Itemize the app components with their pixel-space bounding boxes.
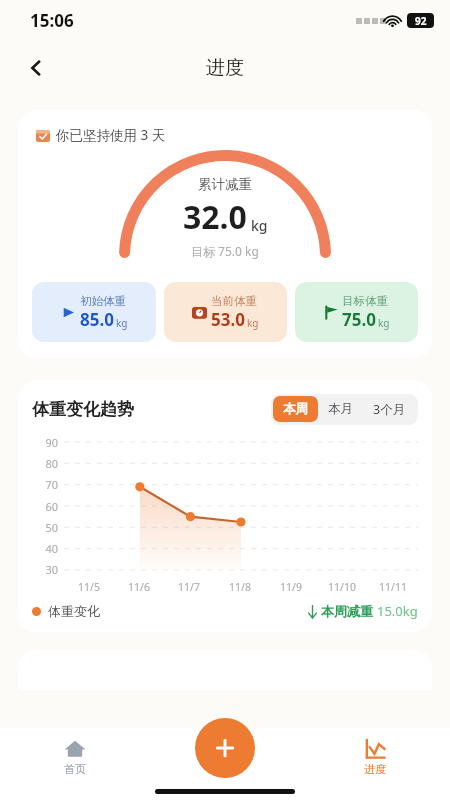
staticText: kg — [251, 216, 268, 235]
staticText: 11/8 — [229, 580, 251, 594]
staticText: 3个月 — [373, 401, 406, 418]
staticText: 11/6 — [128, 580, 150, 594]
button[interactable]: 目标体重 — [295, 282, 418, 342]
button[interactable]: 3个月 — [363, 396, 416, 423]
staticText: 进度 — [206, 56, 244, 80]
staticText: 30 — [45, 562, 58, 577]
button[interactable]: 进度 — [300, 733, 450, 780]
button[interactable]: Add record — [195, 718, 255, 778]
staticText: 80 — [45, 456, 58, 471]
staticText: 60 — [45, 499, 58, 514]
staticText: 50 — [45, 520, 58, 535]
button[interactable]: 初始体重 — [32, 282, 156, 342]
staticText: 本周 — [283, 401, 308, 417]
button[interactable]: 首页 — [0, 733, 150, 780]
staticText: 你已坚持使用 3 天 — [56, 126, 166, 144]
staticText: 初始体重 — [80, 294, 126, 308]
button[interactable]: 当前体重 — [164, 282, 287, 342]
button[interactable]: Back — [14, 46, 58, 90]
staticText: 90 — [45, 435, 58, 450]
staticText: 70 — [45, 477, 58, 492]
staticText: 当前体重 — [211, 294, 257, 308]
staticText: 85.0 — [80, 308, 114, 331]
staticText: 首页 — [64, 762, 86, 776]
staticText: 目标体重 — [342, 294, 388, 308]
staticText: 11/5 — [78, 580, 100, 594]
staticText: 11/11 — [379, 580, 407, 594]
staticText: 本周减重 — [321, 603, 373, 619]
staticText: 11/7 — [178, 580, 200, 594]
staticText: 75.0 — [342, 308, 376, 331]
staticText: kg — [247, 316, 259, 330]
staticText: 体重变化 — [48, 603, 100, 619]
staticText: kg — [378, 316, 390, 330]
staticText: 体重变化趋势 — [32, 399, 134, 420]
staticText: 本月 — [328, 401, 353, 417]
staticText: 53.0 — [211, 308, 245, 331]
staticText: 累计减重 — [198, 176, 252, 193]
staticText: kg — [116, 316, 128, 330]
staticText: 进度 — [364, 762, 386, 776]
staticText: 15.0kg — [377, 602, 418, 620]
staticText: 40 — [45, 541, 58, 556]
staticText: 15:06 — [30, 9, 74, 32]
button[interactable]: 本月 — [318, 396, 363, 422]
staticText: 92 — [415, 14, 427, 28]
staticText: 32.0 — [183, 195, 247, 239]
staticText: 11/10 — [328, 580, 356, 594]
button[interactable]: 本周 — [273, 396, 318, 422]
staticText: 11/9 — [280, 580, 302, 594]
staticText: 目标 75.0 kg — [191, 243, 259, 259]
